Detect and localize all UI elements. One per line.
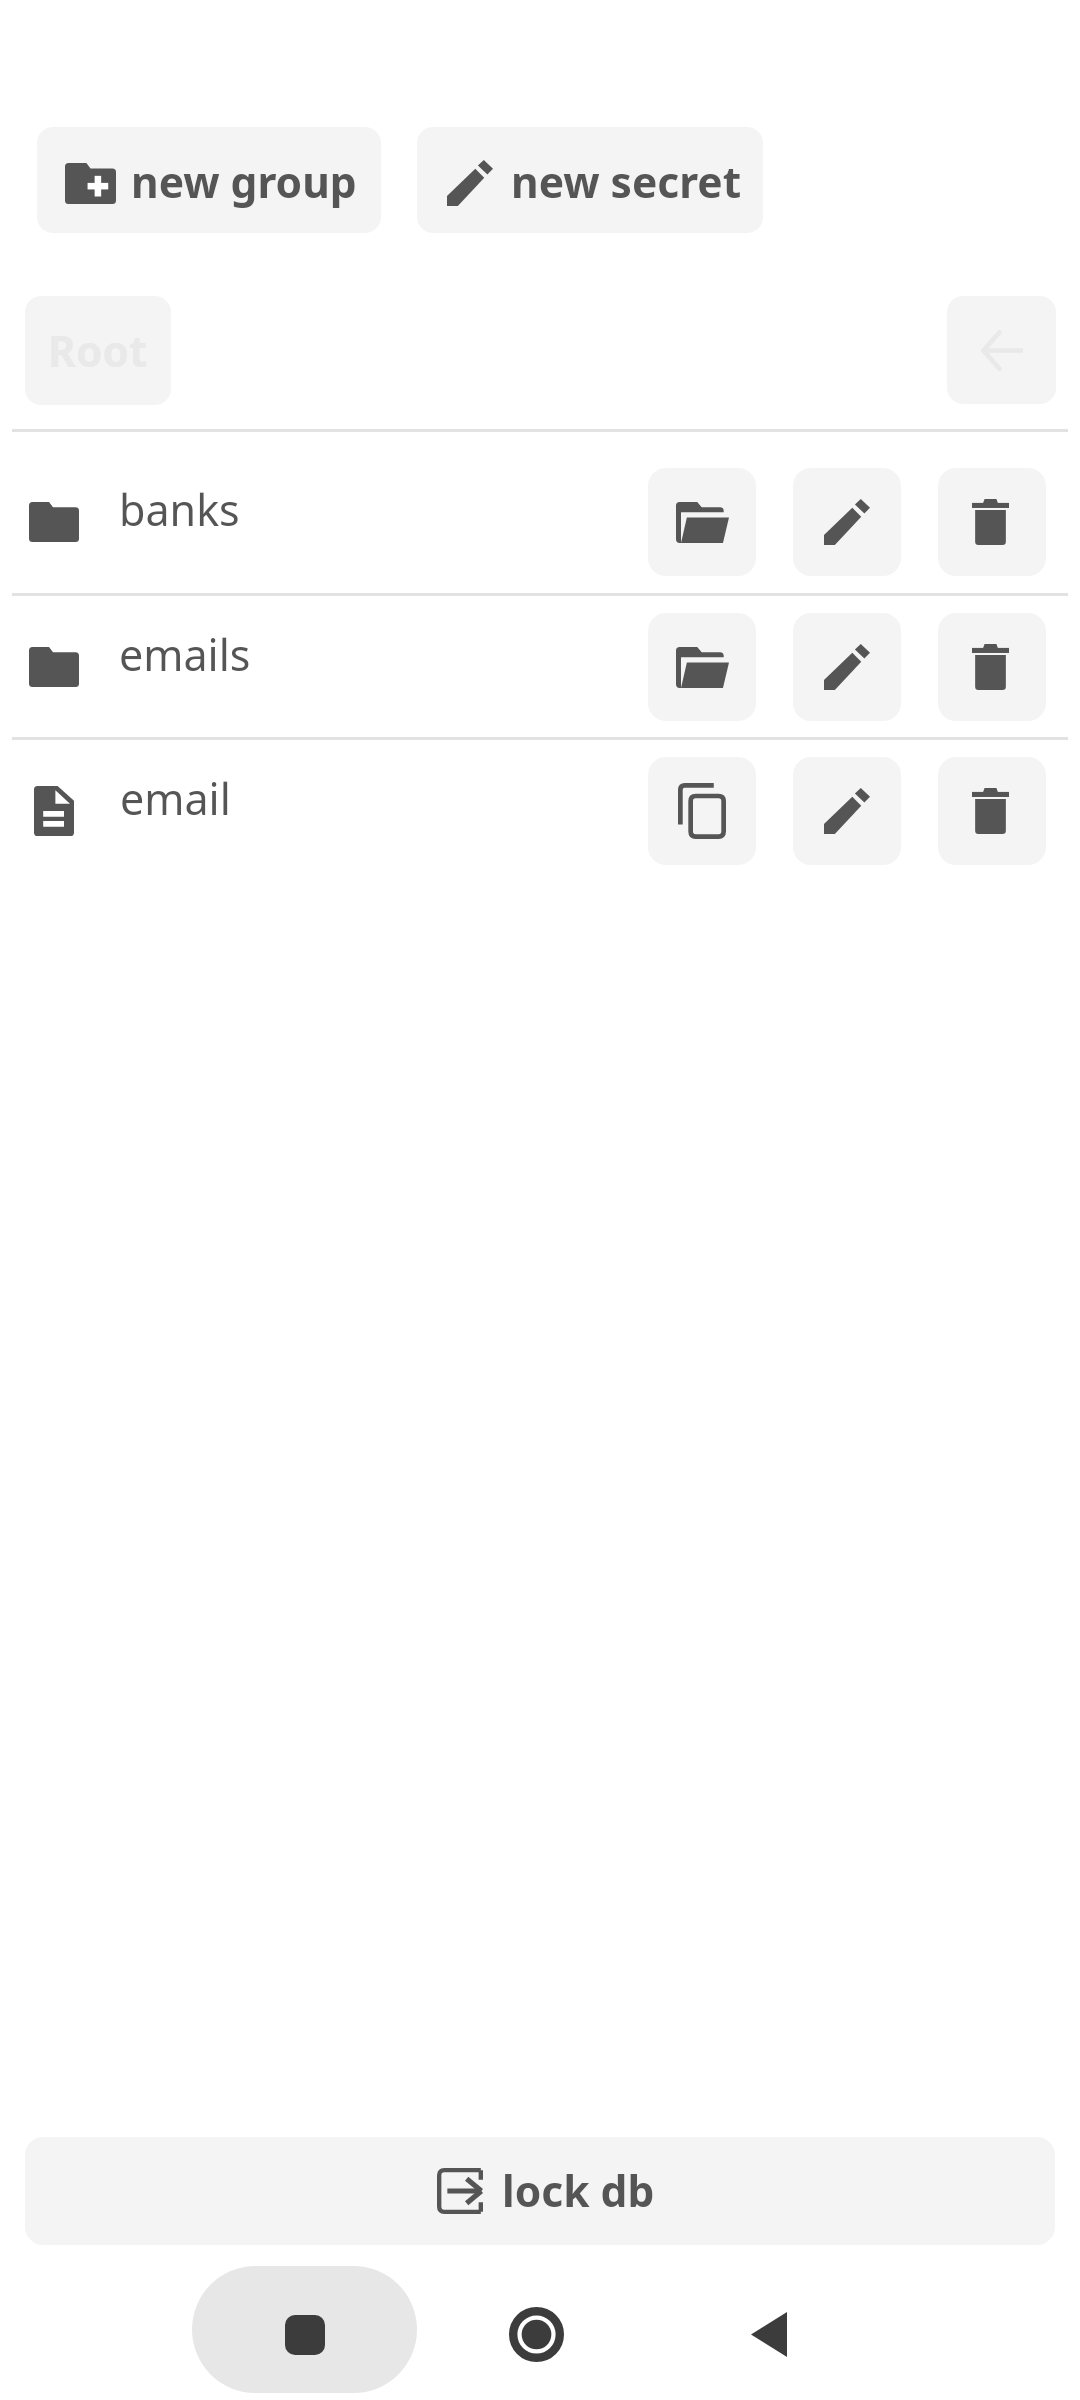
button[interactable]: email — [0, 740, 1080, 881]
button[interactable]: Delete — [938, 613, 1046, 721]
button[interactable]: Home — [466, 2271, 606, 2398]
button[interactable]: Root — [25, 296, 171, 405]
button[interactable]: new group — [37, 127, 381, 233]
button[interactable]: Back — [699, 2271, 839, 2398]
staticText: new group — [131, 153, 357, 211]
button[interactable]: Recents — [192, 2266, 417, 2393]
staticText: Root — [48, 322, 148, 380]
button[interactable]: lock db — [25, 2137, 1055, 2245]
staticText: new secret — [511, 153, 742, 211]
button[interactable]: Open — [648, 613, 756, 721]
button[interactable]: new secret — [417, 127, 763, 233]
staticText: emails — [119, 625, 251, 684]
button[interactable]: Open — [648, 468, 756, 576]
staticText: banks — [119, 480, 240, 539]
button[interactable]: Edit — [793, 613, 901, 721]
button[interactable]: Edit — [793, 468, 901, 576]
staticText: email — [120, 769, 231, 828]
button[interactable]: Copy — [648, 757, 756, 865]
button[interactable]: Delete — [938, 468, 1046, 576]
button[interactable]: emails — [0, 596, 1080, 737]
staticText: lock db — [502, 2162, 655, 2220]
button[interactable]: Edit — [793, 757, 901, 865]
button[interactable]: banks — [0, 432, 1080, 593]
button[interactable]: Delete — [938, 757, 1046, 865]
